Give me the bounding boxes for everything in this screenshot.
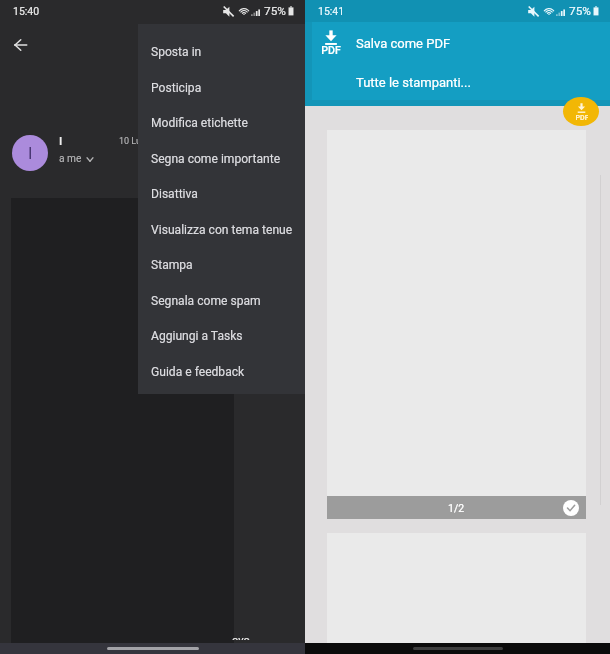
- button[interactable]: PDF: [312, 22, 610, 64]
- staticText: I: [59, 134, 63, 147]
- button[interactable]: Aggiungi a Tasks: [138, 318, 305, 354]
- staticText: 75%: [569, 4, 591, 18]
- button[interactable]: Page selected: [563, 500, 579, 516]
- staticText: PDF: [321, 44, 341, 56]
- staticText: Segnala come spam: [151, 294, 261, 308]
- button[interactable]: Sposta in: [138, 34, 305, 70]
- staticText: 15:41: [318, 5, 345, 17]
- button[interactable]: Disattiva: [138, 176, 305, 212]
- button[interactable]: Modifica etichette: [138, 105, 305, 141]
- button[interactable]: Segnala come spam: [138, 283, 305, 319]
- staticText: 15:40: [13, 5, 40, 17]
- staticText: a me: [59, 153, 82, 165]
- staticText: 10 Lu: [119, 136, 141, 147]
- button[interactable]: Visualizza con tema tenue: [138, 212, 305, 248]
- button[interactable]: Guida e feedback: [138, 354, 305, 390]
- staticText: Modifica etichette: [151, 116, 248, 130]
- staticText: Visualizza con tema tenue: [151, 223, 293, 237]
- staticText: I: [28, 144, 33, 163]
- staticText: Posticipa: [151, 81, 202, 95]
- staticText: Aggiungi a Tasks: [151, 329, 243, 343]
- staticText: PDF: [575, 113, 588, 121]
- staticText: Stampa: [151, 258, 193, 272]
- button[interactable]: Save as PDF: [563, 97, 599, 126]
- button[interactable]: Posticipa: [138, 70, 305, 106]
- staticText: 1/2: [448, 502, 465, 514]
- button[interactable]: Segna come importante: [138, 141, 305, 177]
- staticText: ovo: [232, 637, 250, 640]
- button[interactable]: Tutte le stampanti...: [312, 64, 610, 100]
- staticText: Tutte le stampanti...: [356, 75, 471, 90]
- staticText: 75%: [264, 4, 286, 18]
- staticText: Guida e feedback: [151, 365, 245, 379]
- button[interactable]: Back: [7, 31, 34, 58]
- staticText: Segna come importante: [151, 152, 281, 166]
- staticText: Sposta in: [151, 45, 202, 59]
- staticText: Disattiva: [151, 187, 198, 201]
- button[interactable]: Stampa: [138, 247, 305, 283]
- staticText: Salva come PDF: [356, 36, 451, 51]
